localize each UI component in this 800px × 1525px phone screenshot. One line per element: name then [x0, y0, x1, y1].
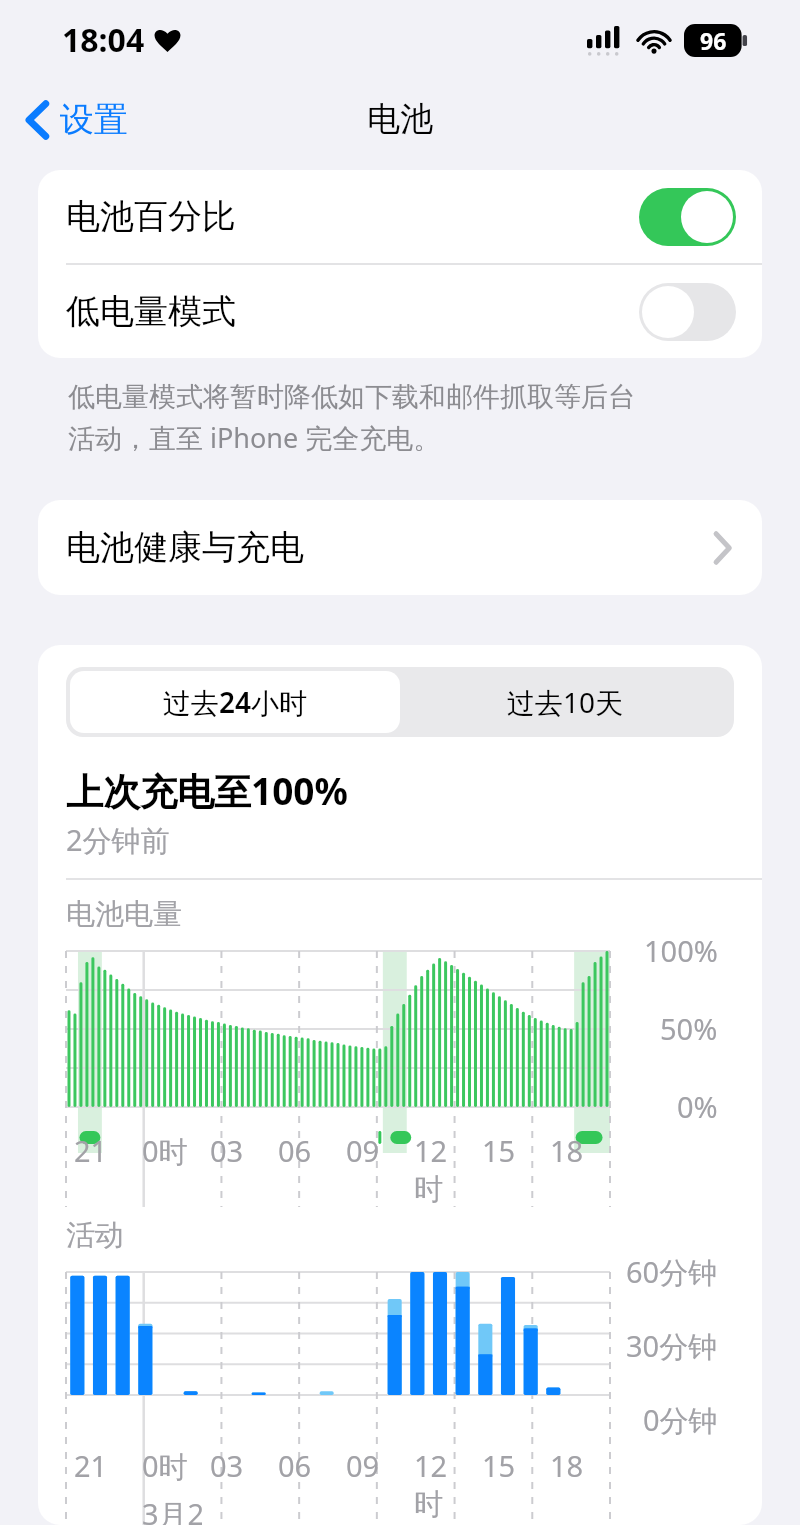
button[interactable]: 电池百分比	[38, 170, 762, 263]
staticText: 06	[278, 1446, 312, 1485]
button[interactable]: 过去10天	[400, 671, 730, 733]
staticText: 2分钟前	[66, 820, 170, 860]
staticText: 03	[210, 1446, 244, 1485]
staticText: 09	[346, 1446, 380, 1485]
staticText: 100%	[644, 931, 718, 970]
other: 关闭	[639, 283, 736, 341]
staticText: 96	[700, 25, 727, 56]
staticText: 0分钟	[643, 1400, 718, 1440]
staticText: 低电量模式将暂时降低如下载和邮件抓取等后台 活动，直至 iPhone 完全充电。	[68, 380, 635, 456]
staticText: 活动	[66, 1217, 124, 1254]
staticText: 15	[482, 1131, 516, 1170]
staticText: 21	[74, 1131, 108, 1170]
staticText: 50%	[660, 1009, 718, 1048]
staticText: 电池电量	[66, 896, 182, 933]
staticText: 电池健康与充电	[66, 526, 713, 569]
staticText: 电池	[367, 98, 433, 140]
button[interactable]: 电池健康与充电	[38, 500, 762, 595]
staticText: 18	[550, 1446, 584, 1485]
staticText: 06	[278, 1131, 312, 1170]
other: 开启	[639, 188, 736, 246]
staticText: 设置	[60, 98, 128, 141]
staticText: 18:04	[62, 18, 145, 62]
staticText: 过去10天	[507, 683, 624, 721]
button[interactable]: 低电量模式	[38, 265, 762, 358]
staticText: 0时	[142, 1446, 188, 1486]
staticText: 0时	[142, 1131, 188, 1171]
staticText: 09	[346, 1131, 380, 1170]
staticText: 12时	[414, 1131, 474, 1208]
staticText: 12时	[414, 1446, 474, 1523]
staticText: 电池百分比	[66, 195, 639, 238]
button[interactable]: 设置	[18, 90, 136, 149]
staticText: 低电量模式	[66, 290, 639, 333]
staticText: 上次充电至100%	[66, 765, 348, 816]
staticText: 18	[550, 1131, 584, 1170]
button[interactable]: 过去24小时	[70, 671, 400, 733]
staticText: 03	[210, 1131, 244, 1170]
staticText: 15	[482, 1446, 516, 1485]
staticText: 21	[74, 1446, 108, 1485]
staticText: 30分钟	[626, 1326, 718, 1366]
staticText: 60分钟	[626, 1252, 718, 1292]
staticText: 过去24小时	[163, 683, 308, 721]
staticText: 3月20日	[142, 1494, 202, 1525]
staticText: 0%	[677, 1087, 718, 1126]
